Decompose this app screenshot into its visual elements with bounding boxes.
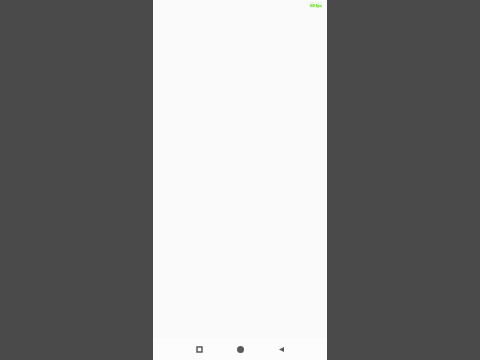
button[interactable]: Back bbox=[271, 339, 291, 359]
button[interactable]: Recent apps bbox=[189, 339, 209, 359]
staticText: 60 fps bbox=[310, 3, 322, 8]
button[interactable]: Home bbox=[230, 339, 250, 359]
